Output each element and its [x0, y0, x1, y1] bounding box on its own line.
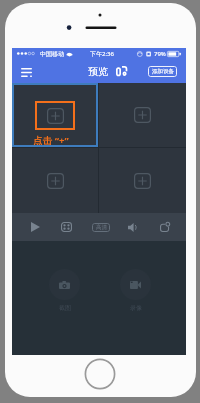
staticText: 点击 “+”	[33, 134, 69, 147]
button[interactable]: 点击 “+”	[12, 83, 98, 147]
button[interactable]: 预览	[88, 65, 127, 78]
button[interactable]: 录像	[120, 269, 151, 312]
button[interactable]: 截图	[49, 269, 80, 312]
button[interactable]	[12, 148, 98, 213]
button[interactable]: Layout	[57, 218, 75, 236]
button[interactable]	[99, 83, 186, 147]
button[interactable]: 添加设备	[148, 66, 177, 77]
staticText: 录像	[130, 304, 142, 312]
staticText: 中国移动	[40, 50, 64, 58]
button[interactable]: Menu	[16, 62, 36, 82]
button[interactable]: Volume	[123, 218, 141, 236]
button[interactable]: Play	[26, 218, 44, 236]
button[interactable]	[99, 148, 186, 213]
staticText: 79%	[154, 50, 166, 58]
button[interactable]: Settings	[156, 218, 174, 236]
button[interactable]: 高清	[92, 223, 110, 232]
staticText: 预览	[88, 65, 108, 78]
staticText: 截图	[59, 304, 71, 312]
staticText: 高清	[96, 224, 107, 231]
staticText: 下午2:36	[90, 50, 114, 58]
staticText: 添加设备	[152, 68, 174, 75]
